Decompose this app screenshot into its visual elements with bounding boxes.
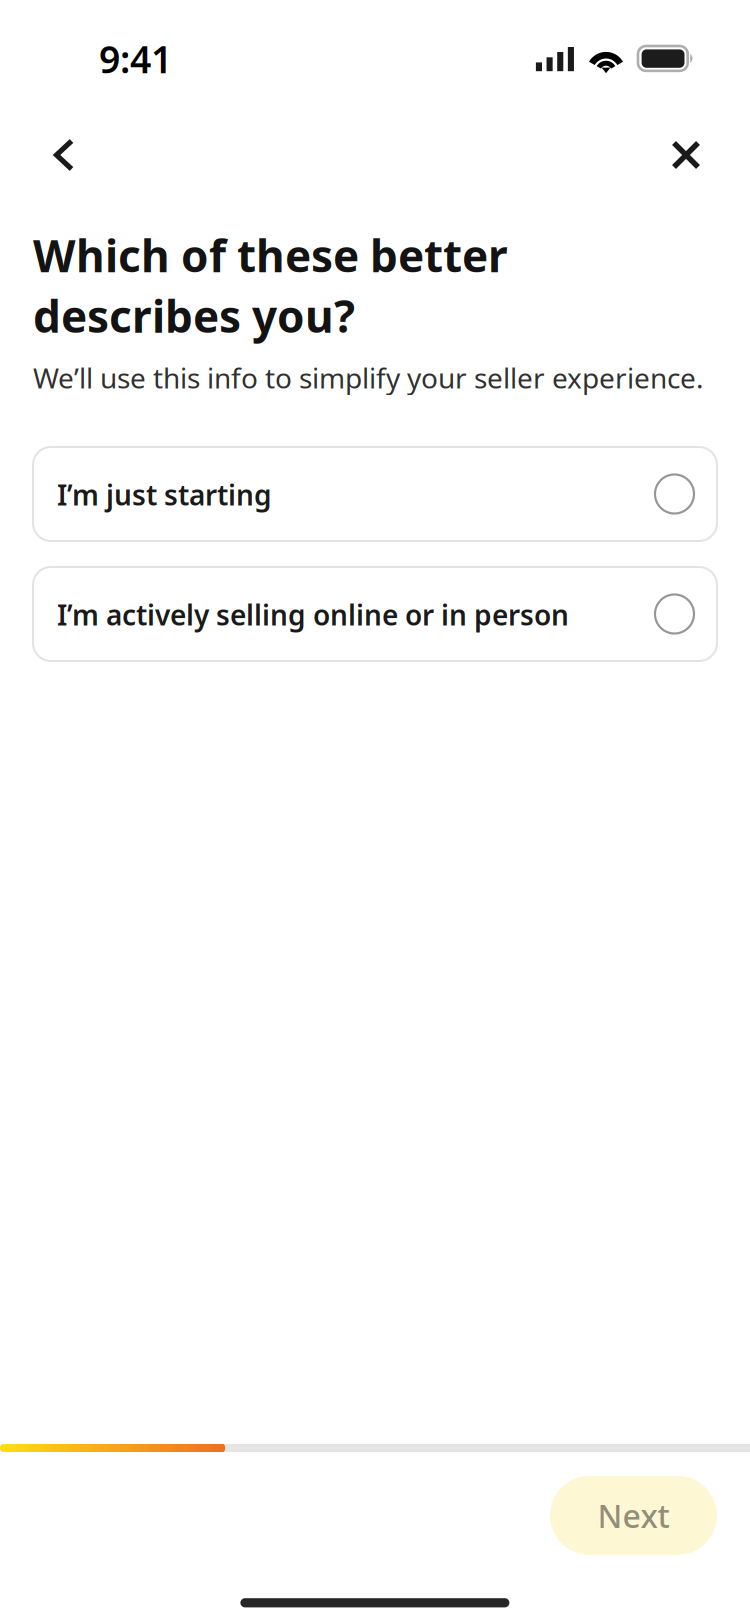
staticText: Which of these better describes you? [33, 226, 508, 345]
button[interactable]: Close [650, 118, 724, 192]
staticText: We’ll use this info to simplify your sel… [33, 359, 704, 396]
button[interactable]: I’m just starting [33, 447, 717, 541]
button[interactable]: Next [550, 1476, 717, 1555]
button[interactable]: Back [24, 118, 98, 192]
staticText: I’m actively selling online or in person [57, 596, 569, 633]
button[interactable]: I’m actively selling online or in person [33, 567, 717, 661]
staticText: 9:41 [99, 34, 172, 84]
staticText: Next [597, 1494, 669, 1537]
staticText: I’m just starting [57, 476, 272, 513]
